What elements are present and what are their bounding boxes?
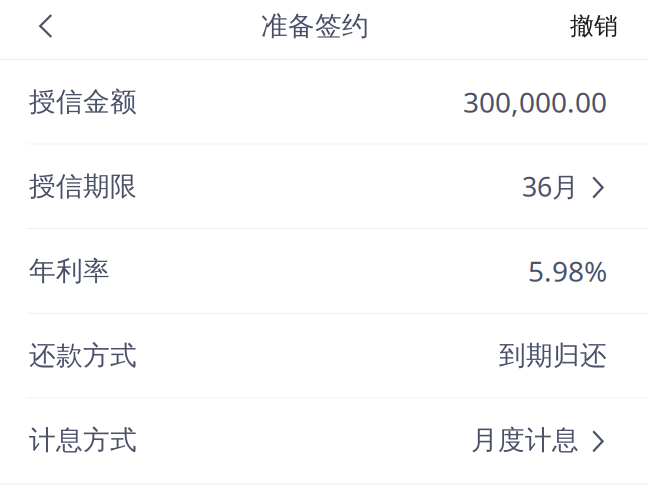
button[interactable]: 还款方式	[0, 314, 648, 397]
staticText: 准备签约	[261, 10, 369, 42]
staticText: 300,000.00	[463, 83, 607, 120]
staticText: 到期归还	[499, 339, 607, 372]
button[interactable]: 年利率	[0, 229, 648, 313]
staticText: 授信金额	[29, 85, 137, 118]
staticText: 撤销	[570, 11, 618, 41]
staticText: 计息方式	[29, 424, 137, 457]
staticText: 5.98%	[528, 252, 607, 290]
staticText: 授信期限	[29, 170, 137, 203]
button[interactable]: 计息方式	[0, 398, 648, 482]
staticText: 36月	[522, 169, 579, 204]
staticText: 月度计息	[471, 424, 579, 457]
staticText: 还款方式	[29, 339, 137, 372]
button[interactable]: 授信金额	[0, 60, 648, 144]
staticText: 年利率	[29, 255, 110, 287]
button[interactable]: 撤销	[550, 0, 648, 52]
button[interactable]: 授信期限	[0, 145, 648, 228]
button[interactable]: Back	[0, 0, 72, 52]
